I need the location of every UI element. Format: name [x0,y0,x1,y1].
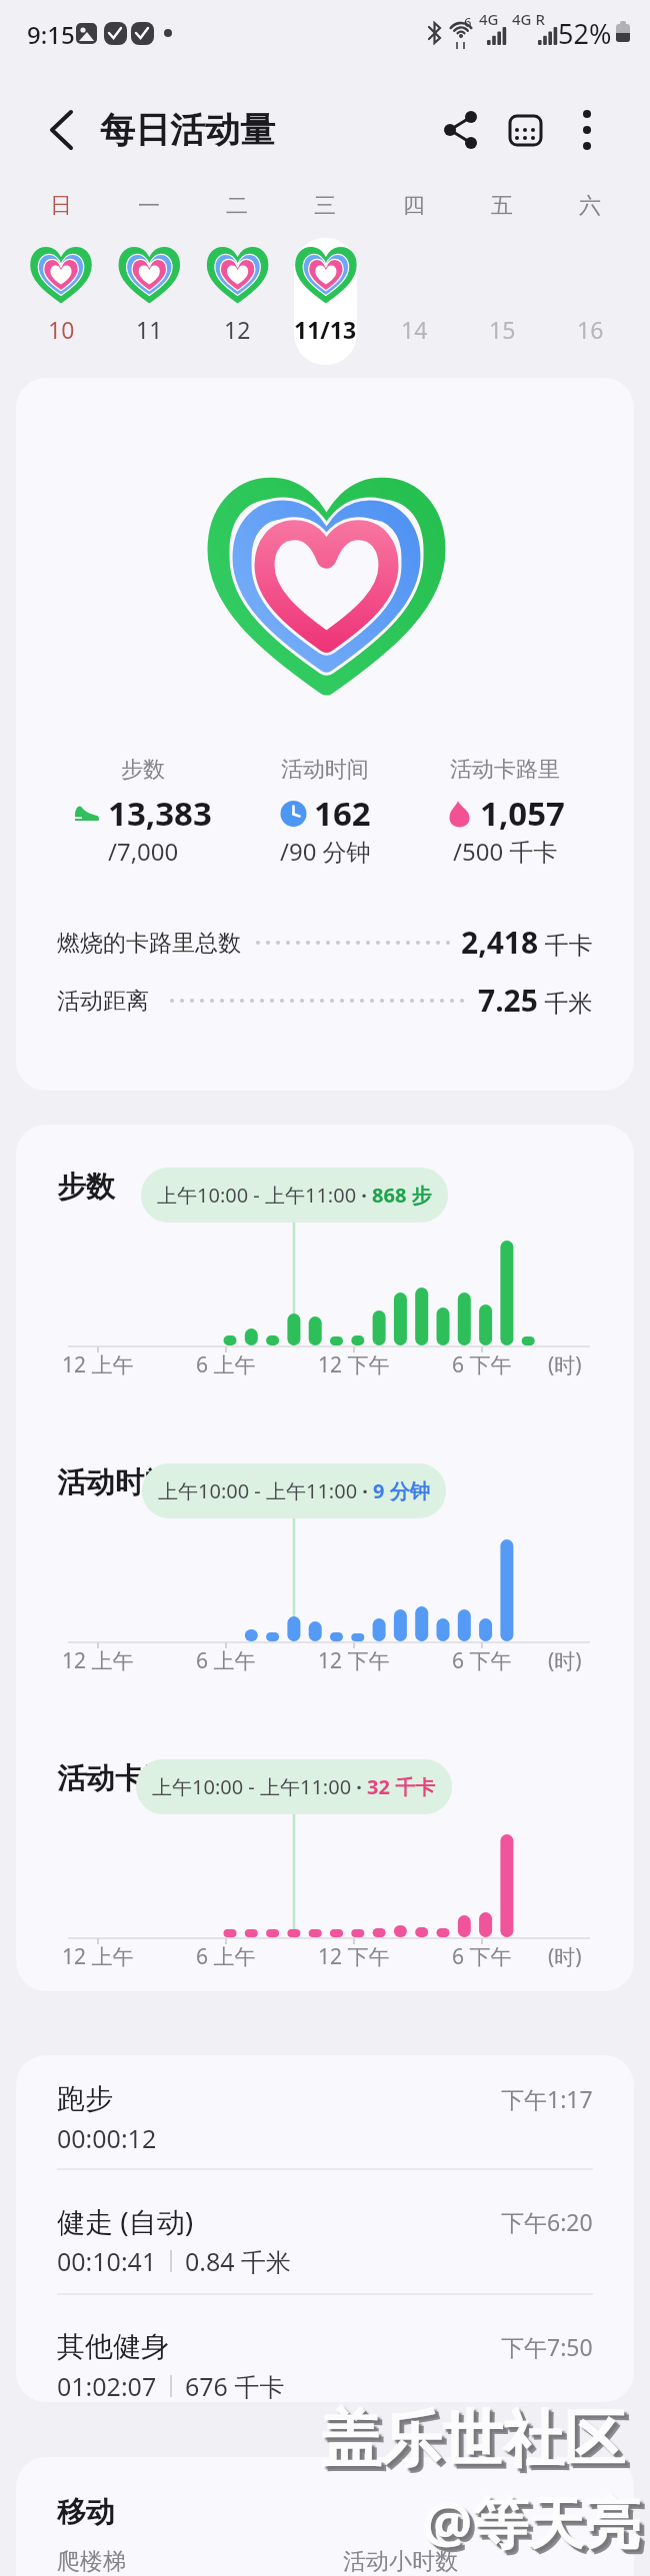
staticText: 五 [491,192,513,220]
staticText: 676 千卡 [185,2369,285,2402]
staticText: 2,418 千卡 [461,922,593,963]
staticText: 下午1:17 [501,2083,593,2114]
staticText: 燃烧的卡路里总数 [57,929,241,958]
staticText: 下午7:50 [501,2331,593,2362]
staticText: 15 [489,314,516,345]
staticText: 上午10:00 - 上午11:00 · 868 步 [157,1182,432,1209]
staticText: 52% [558,15,612,52]
staticText: 11 [136,314,163,345]
staticText: 六 [579,192,601,220]
staticText: 活动卡路里 [450,756,560,784]
staticText: 活动时间 [281,756,369,784]
staticText: 6 上午 [196,1942,256,1971]
staticText: 162 [314,791,371,836]
staticText: 10 [48,314,75,345]
staticText: 16 [577,314,604,345]
staticText: 三 [314,192,336,220]
staticText: 12 上午 [62,1350,134,1379]
staticText: 爬楼梯 [57,2547,126,2576]
staticText: 6 [464,13,472,31]
staticText: 上午10:00 - 上午11:00 · 9 分钟 [158,1477,430,1504]
staticText: 1,057 [480,791,565,836]
staticText: 00:10:41 [57,2244,157,2278]
staticText: 6 上午 [196,1350,256,1379]
staticText: 活动卡路里 [57,1760,202,1797]
staticText: 14 [401,314,428,345]
staticText: (时) [548,1350,582,1379]
staticText: 12 下午 [318,1942,390,1971]
staticText: /500 千卡 [453,835,558,868]
staticText: 四 [403,192,425,220]
staticText: 7.25 千米 [478,980,593,1021]
staticText: 12 [224,314,251,345]
staticText: 6 上午 [196,1646,256,1675]
staticText: 13,383 [108,791,212,836]
staticText: 盖乐世社区 [325,2406,630,2483]
staticText: 11/13 [294,314,357,345]
staticText: 6 下午 [452,1942,512,1971]
staticText: 活动时间 [57,1464,173,1501]
staticText: 0.84 千米 [185,2244,292,2278]
staticText: 每日活动量 [100,108,275,152]
staticText: 盖乐世社区 [320,2401,625,2478]
staticText: 活动小时数 [343,2547,458,2576]
staticText: 01:02:07 [57,2369,157,2402]
staticText: @等天亮 [427,2488,646,2564]
staticText: 4G [479,9,499,29]
staticText: 步数 [121,756,165,784]
staticText: 6 下午 [452,1350,512,1379]
staticText: 6 下午 [452,1646,512,1675]
staticText: /90 分钟 [280,835,371,868]
staticText: 其他健身 [57,2329,169,2364]
staticText: 00:00:12 [57,2121,157,2155]
staticText: 9:15 [27,18,75,51]
staticText: 下午6:20 [501,2206,593,2237]
staticText: 日 [50,192,72,220]
staticText: 移动 [57,2494,115,2531]
staticText: 12 上午 [62,1942,134,1971]
staticText: 12 上午 [62,1646,134,1675]
staticText: 一 [138,192,160,220]
staticText: /7,000 [108,835,179,868]
staticText: @等天亮 [422,2483,641,2559]
staticText: 12 下午 [318,1646,390,1675]
staticText: 步数 [57,1169,115,1206]
staticText: (时) [548,1942,582,1971]
staticText: 12 下午 [318,1350,390,1379]
staticText: 跑步 [57,2081,113,2116]
staticText: 活动距离 [57,987,149,1016]
staticText: 健走 (自动) [57,2202,194,2240]
staticText: (时) [548,1646,582,1675]
staticText: 二 [226,192,248,220]
staticText: 上午10:00 - 上午11:00 · 32 千卡 [152,1773,436,1800]
staticText: 4G R [512,9,545,29]
